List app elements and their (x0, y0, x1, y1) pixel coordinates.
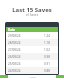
staticText: 27/08/24 (8, 48, 44, 52)
staticText: 0.91 (44, 62, 50, 66)
staticText: 0.98 (44, 55, 50, 59)
button[interactable]: 28/08/24 (6, 39, 58, 46)
staticText: 24/08/24 (8, 69, 44, 73)
staticText: 1.18 (44, 41, 50, 45)
button[interactable]: 26/08/24 (6, 53, 58, 60)
button[interactable]: 27/08/24 (6, 46, 58, 53)
staticText: 0.88 (44, 69, 50, 73)
staticText: Date (8, 28, 16, 32)
staticText: 29/08/24 (8, 34, 44, 38)
staticText: 25/08/24 (8, 62, 44, 66)
staticText: 26/08/24 (8, 55, 44, 59)
staticText: 1.02 (44, 48, 50, 52)
staticText: 1 of 3 (29, 75, 36, 78)
button[interactable]: 25/08/24 (6, 60, 58, 67)
staticText: 1.24 (44, 34, 50, 38)
staticText: of Saves (0, 13, 64, 17)
button[interactable]: 24/08/24 (6, 67, 58, 74)
staticText: 28/08/24 (8, 41, 44, 45)
staticText: Last 15 Saves (0, 6, 64, 12)
button[interactable]: 29/08/24 (6, 32, 58, 39)
